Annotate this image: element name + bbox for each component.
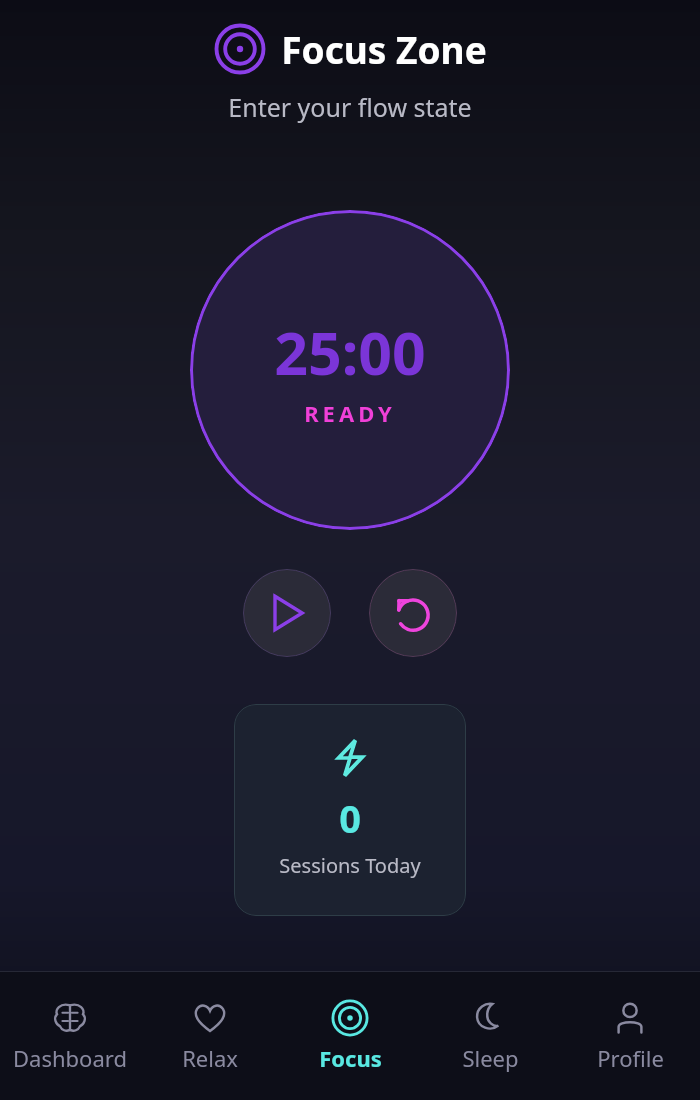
button[interactable]: 25:00 [190, 210, 510, 530]
staticText: READY [304, 398, 396, 428]
staticText: Dashboard [13, 1043, 127, 1073]
staticText: Relax [182, 1043, 238, 1073]
staticText: 25:00 [274, 312, 426, 392]
staticText: Sessions Today [279, 852, 421, 879]
staticText: 0 [339, 792, 361, 844]
button[interactable]: Start timer [243, 569, 331, 657]
button[interactable]: Relax [140, 991, 280, 1081]
button[interactable]: 0 [234, 704, 466, 916]
button[interactable]: Profile [560, 991, 700, 1081]
staticText: Focus Zone [281, 24, 487, 74]
button[interactable]: Sleep [420, 991, 560, 1081]
staticText: Focus [319, 1043, 382, 1073]
staticText: Sleep [462, 1043, 519, 1073]
button[interactable]: Reset timer [369, 569, 457, 657]
button[interactable]: Dashboard [0, 991, 140, 1081]
staticText: Enter your flow state [228, 90, 472, 124]
button[interactable]: Focus [280, 991, 420, 1081]
staticText: Profile [597, 1043, 664, 1073]
